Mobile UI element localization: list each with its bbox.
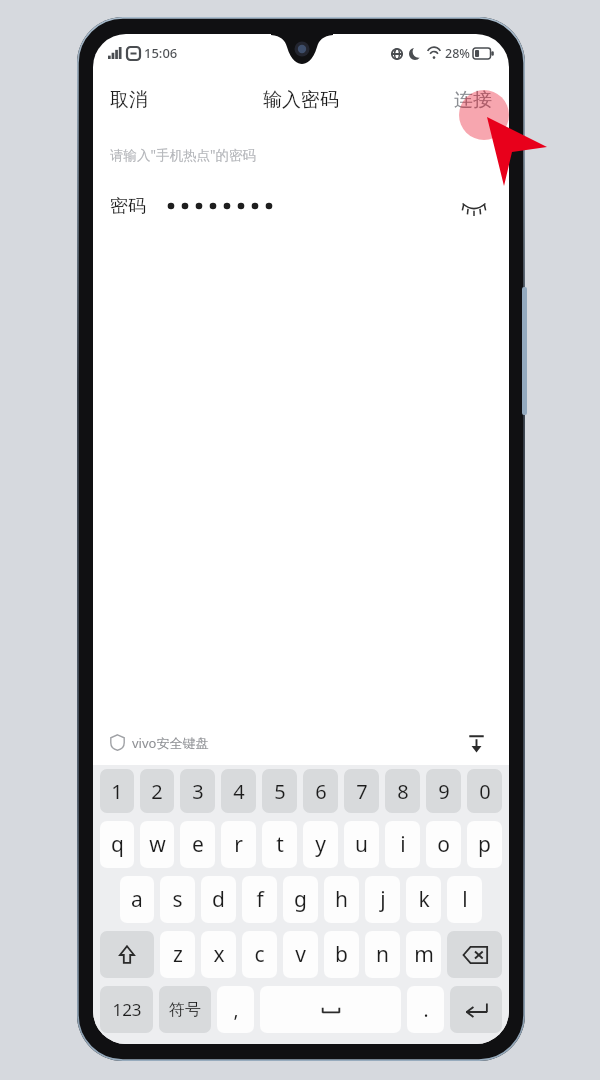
staticText: h [335, 885, 348, 914]
staticText: w [149, 830, 166, 859]
button[interactable]: x [201, 931, 236, 978]
staticText: 输入密码 [263, 88, 339, 112]
staticText: 0 [479, 778, 491, 805]
staticText: 1 [111, 778, 123, 805]
button[interactable]: 2 [140, 769, 174, 813]
staticText: y [315, 830, 326, 859]
button[interactable]: d [201, 876, 236, 923]
button[interactable]: 0 [467, 769, 502, 813]
button[interactable]: w [140, 821, 174, 868]
button[interactable]: v [283, 931, 318, 978]
staticText: z [173, 940, 183, 969]
staticText: 符号 [169, 1000, 201, 1020]
staticText: 5 [274, 778, 286, 805]
button[interactable]: . [407, 986, 444, 1033]
button[interactable]: m [406, 931, 441, 978]
button[interactable]: 4 [221, 769, 256, 813]
button[interactable]: t [262, 821, 297, 868]
staticText: a [131, 885, 143, 914]
staticText: g [294, 885, 307, 914]
button[interactable]: Hide keyboard [460, 727, 492, 759]
button[interactable]: 9 [426, 769, 461, 813]
staticText: x [213, 940, 225, 969]
button[interactable]: n [365, 931, 400, 978]
staticText: i [400, 830, 406, 859]
button[interactable]: o [426, 821, 461, 868]
staticText: 8 [397, 778, 409, 805]
button[interactable]: l [447, 876, 482, 923]
staticText: 请输入"手机热点"的密码 [110, 146, 257, 164]
button[interactable]: 连接 [437, 72, 509, 128]
button[interactable]: 5 [262, 769, 297, 813]
button[interactable]: 取消 [93, 72, 165, 128]
staticText: u [355, 830, 368, 859]
staticText: 取消 [110, 88, 148, 112]
staticText: v [295, 940, 306, 969]
button[interactable]: c [242, 931, 277, 978]
staticText: 连接 [454, 88, 492, 112]
button[interactable]: Shift [100, 931, 154, 978]
button[interactable]: a [120, 876, 154, 923]
button[interactable]: k [406, 876, 441, 923]
staticText: c [254, 940, 265, 969]
staticText: vivo安全键盘 [132, 734, 209, 752]
staticText: e [192, 830, 204, 859]
button[interactable]: 123 [100, 986, 153, 1033]
staticText: r [234, 830, 243, 859]
button[interactable]: Enter [450, 986, 502, 1033]
button[interactable]: Show password [456, 188, 492, 224]
staticText: d [212, 885, 225, 914]
button[interactable]: 7 [344, 769, 379, 813]
button[interactable]: i [385, 821, 420, 868]
staticText: 15:06 [144, 44, 178, 62]
button[interactable]: g [283, 876, 318, 923]
button[interactable]: p [467, 821, 502, 868]
button[interactable]: u [344, 821, 379, 868]
button[interactable]: 密码 [93, 184, 509, 228]
staticText: l [462, 885, 468, 914]
staticText: 28% [445, 45, 470, 62]
staticText: n [376, 940, 389, 969]
button[interactable]: , [217, 986, 254, 1033]
button[interactable]: 6 [303, 769, 338, 813]
button[interactable]: Space [260, 986, 401, 1033]
staticText: 7 [356, 778, 368, 805]
button[interactable]: q [100, 821, 134, 868]
button[interactable]: b [324, 931, 359, 978]
staticText: 9 [438, 778, 450, 805]
button[interactable]: 3 [180, 769, 215, 813]
staticText: 3 [192, 778, 204, 805]
staticText: f [256, 885, 264, 914]
button[interactable]: 1 [100, 769, 134, 813]
staticText: . [423, 997, 429, 1023]
button[interactable]: r [221, 821, 256, 868]
staticText: 6 [315, 778, 327, 805]
button[interactable]: h [324, 876, 359, 923]
staticText: , [233, 997, 239, 1023]
staticText: b [335, 940, 348, 969]
staticText: t [276, 830, 284, 859]
staticText: 4 [233, 778, 245, 805]
staticText: 2 [151, 778, 163, 805]
staticText: m [414, 940, 434, 969]
staticText: o [437, 830, 450, 859]
button[interactable]: Backspace [447, 931, 502, 978]
button[interactable]: e [180, 821, 215, 868]
staticText: p [478, 830, 491, 859]
button[interactable]: 符号 [159, 986, 211, 1033]
button[interactable]: z [160, 931, 195, 978]
button[interactable]: 8 [385, 769, 420, 813]
staticText: s [172, 885, 183, 914]
staticText: 123 [112, 998, 142, 1021]
staticText: q [111, 830, 124, 859]
button[interactable]: f [242, 876, 277, 923]
button[interactable]: s [160, 876, 195, 923]
staticText: k [418, 885, 430, 914]
staticText: j [380, 885, 386, 914]
button[interactable]: j [365, 876, 400, 923]
staticText: 密码 [110, 195, 146, 218]
button[interactable]: y [303, 821, 338, 868]
